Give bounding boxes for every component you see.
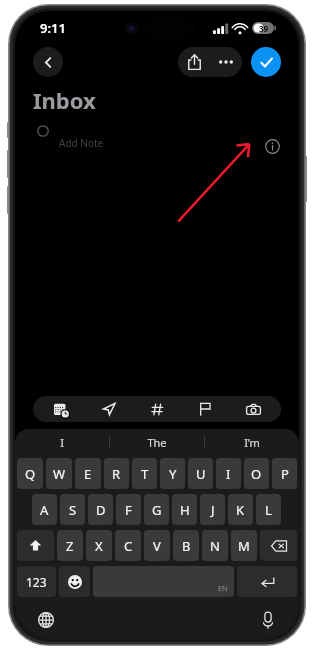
button[interactable]: Share <box>178 47 210 77</box>
button[interactable]: H <box>172 494 197 525</box>
button[interactable]: K <box>228 494 253 525</box>
button[interactable]: J <box>200 494 225 525</box>
button[interactable]: I’m <box>205 429 299 455</box>
button[interactable]: Tag <box>137 396 177 422</box>
button[interactable]: C <box>115 530 141 561</box>
button[interactable]: Flag <box>185 396 225 422</box>
staticText: I <box>60 435 64 450</box>
button[interactable]: X <box>86 530 112 561</box>
staticText: T <box>141 465 149 483</box>
button[interactable]: Y <box>160 458 185 489</box>
button[interactable]: Z <box>57 530 83 561</box>
staticText: Q <box>25 465 36 483</box>
staticText: Add Note <box>59 136 104 150</box>
staticText: I’m <box>244 435 260 450</box>
button[interactable]: N <box>202 530 228 561</box>
button[interactable]: Done <box>251 47 281 77</box>
button[interactable]: B <box>173 530 199 561</box>
button[interactable]: 123 <box>17 566 56 597</box>
staticText: 39 <box>259 23 269 34</box>
button[interactable]: Dictate <box>253 605 283 635</box>
button[interactable]: M <box>231 530 257 561</box>
button[interactable]: V <box>144 530 170 561</box>
button[interactable]: Return <box>237 566 297 597</box>
button[interactable]: Schedule <box>41 396 81 422</box>
button[interactable]: L <box>256 494 281 525</box>
button[interactable]: F <box>116 494 141 525</box>
button[interactable]: Info <box>261 135 283 157</box>
staticText: E <box>84 465 92 483</box>
button[interactable]: Backspace <box>260 530 297 561</box>
staticText: P <box>281 465 289 483</box>
button[interactable]: Emoji <box>59 566 90 597</box>
staticText: V <box>153 537 161 555</box>
staticText: Z <box>66 537 74 555</box>
button[interactable]: A <box>32 494 57 525</box>
staticText: G <box>152 501 162 519</box>
button[interactable]: Send <box>89 396 129 422</box>
button[interactable]: T <box>132 458 157 489</box>
staticText: I <box>226 465 231 483</box>
staticText: R <box>112 465 121 483</box>
staticText: U <box>196 465 206 483</box>
button[interactable]: Space <box>93 566 234 597</box>
staticText: The <box>147 435 167 450</box>
staticText: S <box>69 501 77 519</box>
button[interactable]: I <box>15 429 109 455</box>
staticText: W <box>53 465 66 483</box>
staticText: K <box>236 501 245 519</box>
staticText: 123 <box>26 574 47 590</box>
button[interactable]: Shift <box>17 530 54 561</box>
staticText: EN <box>218 584 228 594</box>
button[interactable]: G <box>144 494 169 525</box>
button[interactable]: P <box>272 458 297 489</box>
button[interactable]: W <box>46 458 72 489</box>
button[interactable]: U <box>188 458 213 489</box>
button[interactable]: D <box>88 494 113 525</box>
staticText: D <box>96 501 106 519</box>
button[interactable]: O <box>244 458 269 489</box>
button[interactable]: Q <box>17 458 43 489</box>
button[interactable]: Change keyboard <box>31 605 61 635</box>
button[interactable]: R <box>104 458 129 489</box>
staticText: L <box>265 501 272 519</box>
button[interactable]: Back <box>33 47 63 77</box>
button[interactable]: S <box>60 494 85 525</box>
staticText: H <box>180 501 190 519</box>
staticText: X <box>95 537 103 555</box>
staticText: 9:11 <box>40 19 66 37</box>
staticText: Y <box>169 465 177 483</box>
staticText: M <box>238 537 250 555</box>
button[interactable]: Add Note <box>37 125 299 159</box>
staticText: C <box>124 537 133 555</box>
staticText: B <box>182 537 191 555</box>
staticText: A <box>40 501 49 519</box>
button[interactable]: E <box>75 458 101 489</box>
button[interactable]: More options <box>210 47 242 77</box>
staticText: F <box>125 501 132 519</box>
button[interactable]: Camera <box>233 396 273 422</box>
staticText: J <box>211 501 215 519</box>
staticText: O <box>251 465 262 483</box>
staticText: Inbox <box>33 85 96 115</box>
button[interactable]: I <box>216 458 241 489</box>
button[interactable]: The <box>110 429 204 455</box>
staticText: N <box>210 537 220 555</box>
